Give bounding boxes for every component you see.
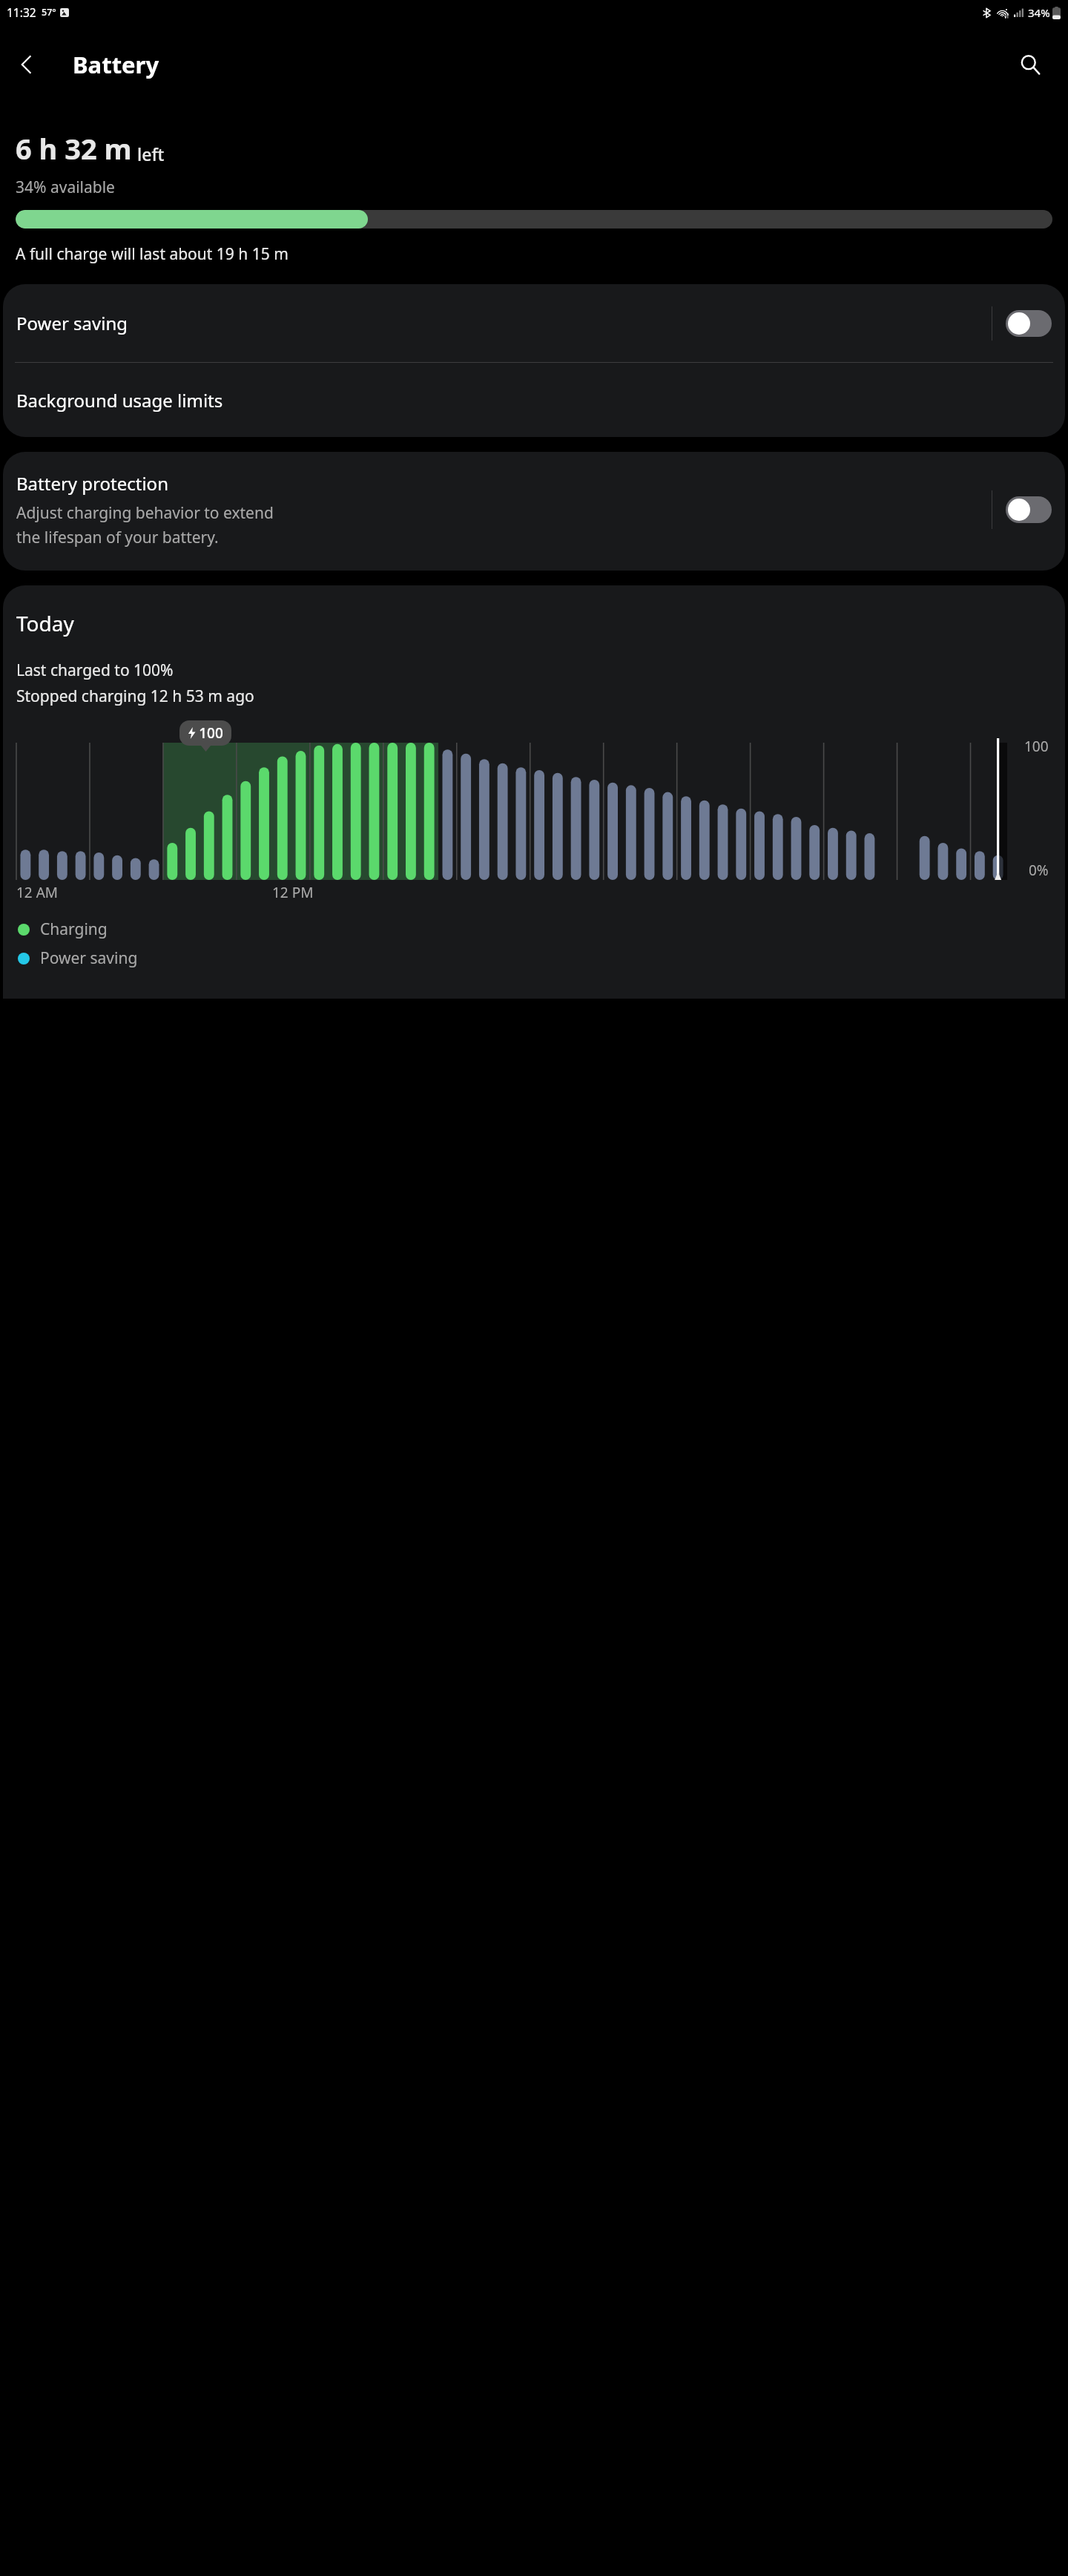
staticText: left (137, 142, 165, 165)
staticText: Power saving (40, 947, 138, 969)
button[interactable]: Search (1007, 42, 1053, 88)
button[interactable]: Back (4, 42, 49, 87)
button[interactable]: Toggle (1006, 496, 1052, 523)
staticText: Adjust charging behavior to extend (16, 502, 274, 524)
staticText: Charging (40, 919, 108, 940)
staticText: 34% (1028, 5, 1050, 20)
staticText: Last charged to 100% (16, 660, 174, 681)
staticText: Background usage limits (16, 388, 223, 413)
staticText: 0% (1029, 861, 1049, 880)
button[interactable]: Background usage limits (3, 363, 1065, 437)
staticText: 100 (1024, 737, 1049, 756)
button[interactable]: 100 (179, 720, 231, 746)
staticText: Stopped charging 12 h 53 m ago (16, 686, 254, 707)
staticText: 100 (199, 723, 223, 743)
staticText: 6 h 32 m (16, 129, 132, 168)
staticText: 12 AM (16, 883, 59, 902)
staticText: Battery protection (16, 471, 168, 496)
staticText: 11:32 (7, 4, 36, 20)
staticText: Power saving (16, 311, 992, 335)
staticText: 57° (42, 6, 56, 19)
staticText: Today (16, 609, 74, 637)
staticText: Battery (73, 49, 159, 80)
staticText: A full charge will last about 19 h 15 m (16, 243, 289, 265)
staticText: 34% available (16, 177, 115, 198)
staticText: 12 PM (272, 883, 314, 902)
button[interactable]: Battery protection (3, 452, 1065, 571)
staticText: the lifespan of your battery. (16, 527, 219, 548)
button[interactable]: Power saving (3, 284, 1065, 362)
button[interactable]: Toggle (1006, 310, 1052, 337)
